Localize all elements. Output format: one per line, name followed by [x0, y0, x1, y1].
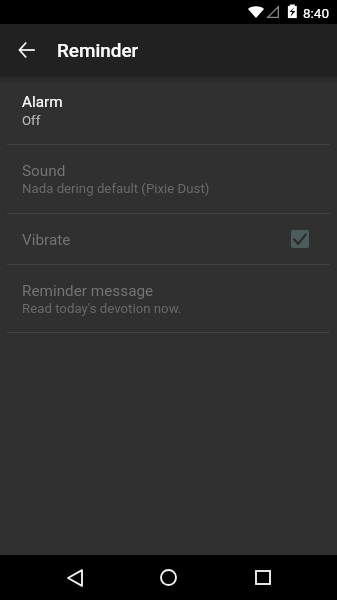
- staticText: Off: [22, 113, 41, 129]
- staticText: Vibrate: [22, 231, 71, 249]
- staticText: Reminder message: [22, 282, 154, 300]
- button[interactable]: Vibrate: [291, 230, 309, 248]
- staticText: 8:40: [303, 5, 330, 21]
- button[interactable]: Vibrate: [0, 214, 337, 264]
- staticText: Reminder: [57, 39, 139, 61]
- button[interactable]: Reminder message: [0, 265, 337, 332]
- staticText: Nada dering default (Pixie Dust): [22, 181, 210, 197]
- staticText: Sound: [22, 162, 66, 180]
- button[interactable]: Back: [46, 555, 103, 600]
- staticText: Read today's devotion now.: [22, 301, 182, 317]
- button[interactable]: Navigate up: [6, 24, 48, 76]
- button[interactable]: Alarm: [0, 76, 337, 144]
- button[interactable]: Recent apps: [234, 555, 291, 600]
- button[interactable]: Sound: [0, 145, 337, 213]
- button[interactable]: Home: [140, 555, 197, 600]
- staticText: Alarm: [22, 93, 63, 111]
